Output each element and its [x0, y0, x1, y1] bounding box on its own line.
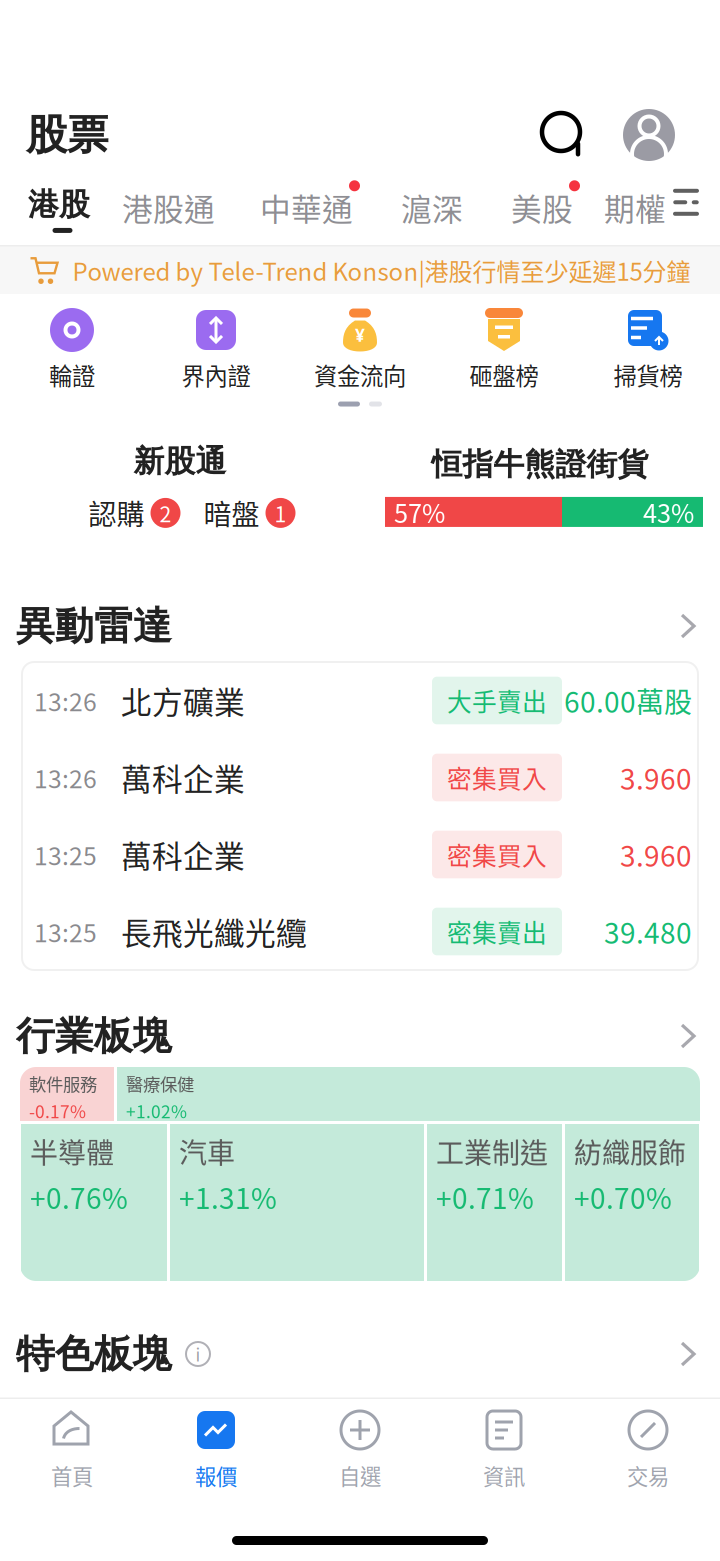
button[interactable]: 恒指牛熊證街貨 [360, 445, 720, 530]
button[interactable]: 異動雷達 [0, 598, 720, 654]
button[interactable]: 軟件服務 [20, 1067, 114, 1121]
staticText: +0.71% [436, 1176, 534, 1217]
staticText: 新股通 [133, 442, 226, 481]
button[interactable]: 期權 [604, 180, 673, 239]
button[interactable]: 資訊 [432, 1409, 576, 1491]
button[interactable]: 行業板塊 [0, 1008, 720, 1064]
button[interactable]: 界內證 [144, 305, 288, 395]
staticText: 57% [394, 494, 445, 530]
button[interactable]: 報價 [144, 1409, 288, 1491]
staticText: 60.00萬股 [564, 680, 692, 721]
button[interactable]: 半導體 [21, 1124, 167, 1281]
staticText: 密集買入 [447, 760, 547, 795]
staticText: 工業制造 [436, 1131, 548, 1171]
button[interactable]: 工業制造 [427, 1124, 562, 1281]
button[interactable]: 13:25 [22, 816, 698, 893]
button[interactable]: ¥ [288, 305, 432, 395]
button[interactable]: 港股通 [122, 180, 222, 239]
staticText: 自選 [339, 1460, 381, 1491]
staticText: 大手賣出 [447, 683, 547, 718]
staticText: +1.02% [126, 1098, 187, 1123]
staticText: 港股 [28, 185, 90, 224]
button[interactable]: 13:26 [22, 662, 698, 739]
staticText: 港股通 [122, 185, 215, 230]
staticText: 界內證 [181, 358, 250, 392]
button[interactable]: 13:25 [22, 893, 698, 970]
staticText: 砸盤榜 [469, 358, 538, 392]
staticText: 3.960 [620, 834, 692, 875]
staticText: 資訊 [483, 1460, 525, 1491]
button[interactable]: 砸盤榜 [432, 305, 576, 395]
staticText: 認購 [88, 493, 144, 533]
staticText: 密集買入 [447, 837, 547, 872]
staticText: 滬深 [401, 185, 463, 230]
staticText: -0.17% [29, 1098, 86, 1123]
button[interactable]: 中華通 [260, 180, 360, 239]
button[interactable]: 特色板塊 [0, 1326, 720, 1382]
staticText: 汽車 [179, 1131, 235, 1171]
staticText: 萬科企業 [121, 832, 245, 877]
button[interactable]: Search [538, 109, 590, 161]
staticText: 43% [643, 494, 694, 530]
staticText: 特色板塊 [16, 1330, 172, 1378]
staticText: 半導體 [30, 1131, 114, 1171]
button[interactable]: 自選 [288, 1409, 432, 1491]
staticText: 軟件服務 [29, 1071, 97, 1096]
button[interactable]: 紡織服飾 [565, 1124, 699, 1281]
staticText: 萬科企業 [121, 755, 245, 800]
button[interactable]: 13:26 [22, 739, 698, 816]
button[interactable]: 港股 [28, 180, 97, 233]
staticText: 交易 [627, 1460, 669, 1491]
staticText: 13:25 [34, 837, 97, 872]
button[interactable]: More tabs [673, 180, 699, 224]
staticText: 13:26 [34, 760, 97, 795]
staticText: +0.76% [30, 1176, 128, 1217]
staticText: 2 [159, 497, 171, 528]
staticText: 北方礦業 [121, 678, 245, 723]
staticText: 1 [274, 497, 286, 528]
staticText: 異動雷達 [16, 602, 172, 650]
staticText: 期權 [604, 185, 666, 230]
staticText: 恒指牛熊證街貨 [431, 445, 648, 483]
staticText: 輪證 [49, 358, 95, 392]
button[interactable]: 輪證 [0, 305, 144, 395]
staticText: ¥ [355, 323, 365, 347]
staticText: +1.31% [179, 1176, 277, 1217]
staticText: 股票 [26, 109, 108, 161]
staticText: 報價 [195, 1460, 237, 1491]
button[interactable]: 掃貨榜 [576, 305, 720, 395]
staticText: 3.960 [620, 757, 692, 798]
button[interactable]: 美股 [511, 180, 580, 239]
staticText: 密集賣出 [447, 914, 547, 949]
staticText: 紡織服飾 [574, 1131, 686, 1171]
staticText: 13:26 [34, 683, 97, 718]
staticText: 行業板塊 [16, 1012, 172, 1060]
button[interactable]: 新股通 [0, 442, 360, 533]
staticText: 首頁 [51, 1460, 93, 1491]
staticText: 醫療保健 [126, 1071, 194, 1096]
staticText: 13:25 [34, 914, 97, 949]
staticText: 掃貨榜 [613, 358, 682, 392]
staticText: 資金流向 [314, 358, 406, 392]
button[interactable]: 醫療保健 [117, 1067, 700, 1121]
staticText: 中華通 [260, 185, 353, 230]
button[interactable]: 滬深 [401, 180, 470, 239]
staticText: 暗盤 [203, 493, 259, 533]
staticText: i [195, 1341, 200, 1367]
staticText: +0.70% [574, 1176, 672, 1217]
button[interactable]: 交易 [576, 1409, 720, 1491]
button[interactable]: 汽車 [170, 1124, 424, 1281]
button[interactable]: Account [623, 109, 675, 161]
staticText: 39.480 [604, 911, 692, 952]
button[interactable]: 首頁 [0, 1409, 144, 1491]
staticText: Powered by Tele-Trend Konson|港股行情至少延遲15分… [72, 253, 690, 288]
staticText: 長飛光纖光纜 [121, 909, 307, 954]
staticText: 美股 [511, 185, 573, 230]
